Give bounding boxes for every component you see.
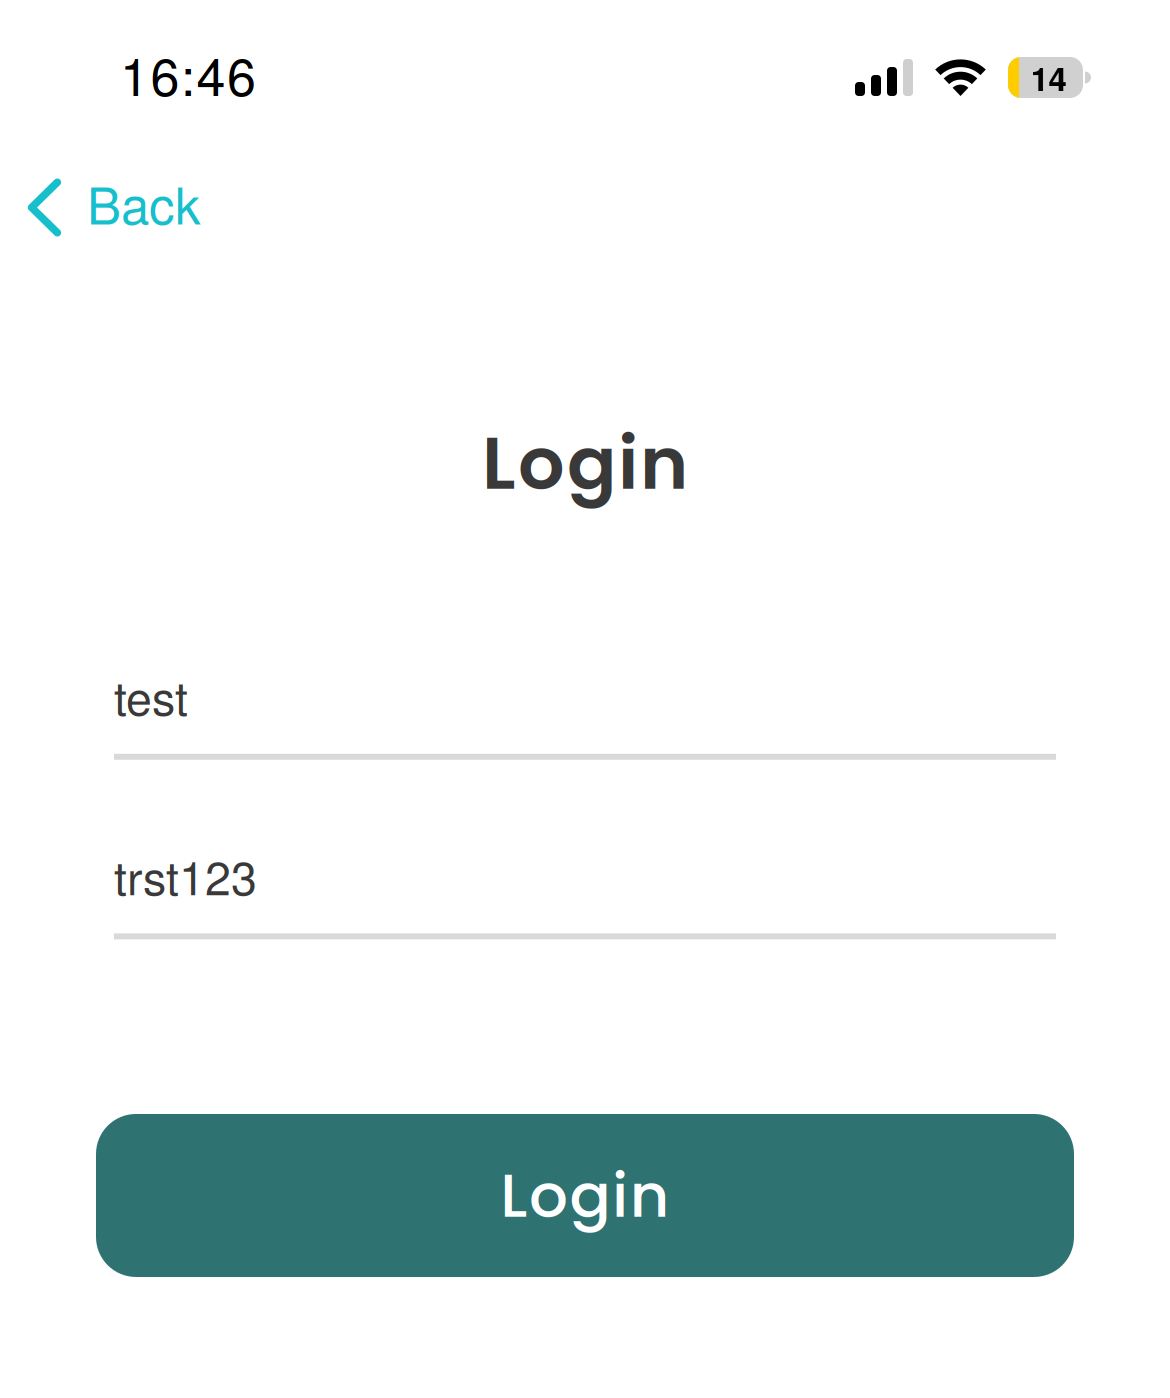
button[interactable]: Back [0, 155, 225, 260]
staticText: 16:46 [120, 36, 256, 111]
staticText: trst123 [114, 842, 257, 908]
staticText: Login [500, 1153, 670, 1238]
staticText: test [114, 662, 188, 729]
staticText: Back [87, 166, 201, 239]
button[interactable]: Login [96, 1114, 1074, 1277]
staticText: Login [482, 412, 688, 514]
staticText: 14 [1030, 54, 1066, 101]
